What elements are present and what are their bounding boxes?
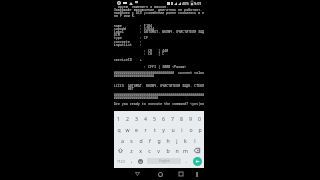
- button[interactable]: 9: [186, 113, 195, 124]
- button[interactable]: Home: [152, 168, 168, 180]
- staticText: 1: [117, 115, 120, 122]
- staticText: k: [184, 137, 187, 144]
- staticText: x: [139, 147, 142, 154]
- button[interactable]: c: [145, 145, 154, 155]
- button[interactable]: s: [127, 135, 136, 145]
- button[interactable]: ?123: [114, 155, 127, 167]
- staticText: m: [183, 147, 188, 154]
- staticText: 2: [126, 115, 129, 122]
- staticText: 8: [180, 115, 183, 122]
- button[interactable]: 8: [177, 113, 186, 124]
- staticText: ,: [131, 158, 133, 165]
- button[interactable]: 5: [150, 113, 159, 124]
- staticText: p: [198, 126, 202, 133]
- button[interactable]: l: [190, 135, 199, 145]
- staticText: 9:01: [194, 1, 202, 6]
- staticText: b: [166, 147, 170, 154]
- staticText: subadd : SIR44: [114, 27, 155, 31]
- staticText: h: [166, 137, 170, 144]
- button[interactable]: t: [150, 124, 159, 135]
- staticText: 40%: [182, 1, 190, 6]
- button[interactable]: d: [136, 135, 145, 145]
- staticText: z: [130, 147, 133, 154]
- staticText: 0: [198, 115, 201, 122]
- staticText: ########################################…: [114, 93, 204, 97]
- staticText: u: [171, 126, 175, 133]
- staticText: l: [194, 137, 196, 144]
- staticText: r: [144, 126, 147, 133]
- button[interactable]: z: [127, 145, 136, 155]
- staticText: serviceID +: [114, 58, 143, 62]
- staticText: ?123: [117, 159, 125, 164]
- button[interactable]: More options: [190, 168, 204, 180]
- staticText: наиболее с ACD усложнении ранее скопилос…: [114, 11, 204, 15]
- button[interactable]: a: [118, 135, 127, 145]
- staticText: j: [176, 137, 178, 144]
- staticText: 9: [189, 115, 192, 122]
- button[interactable]: r: [141, 124, 150, 135]
- staticText: a: [121, 137, 124, 144]
- button[interactable]: x: [136, 145, 145, 155]
- staticText: English: [159, 159, 170, 163]
- button[interactable]: b: [163, 145, 172, 155]
- button[interactable]: 2: [123, 113, 132, 124]
- staticText: Are you ready to execute the command? <y…: [114, 102, 204, 106]
- button[interactable]: m: [181, 145, 190, 155]
- button[interactable]: Emoji: [136, 155, 145, 167]
- staticText: w: [125, 126, 130, 133]
- staticText: t: [154, 126, 156, 133]
- staticText: 6: [162, 115, 165, 122]
- button[interactable]: 6: [159, 113, 168, 124]
- button[interactable]: n: [172, 145, 181, 155]
- button[interactable]: g: [154, 135, 163, 145]
- staticText: 5: [153, 115, 156, 122]
- button[interactable]: w: [123, 124, 132, 135]
- button[interactable]: q: [114, 124, 123, 135]
- staticText: НЕТ: [114, 87, 135, 91]
- staticText: n: [175, 147, 179, 154]
- button[interactable]: 7: [168, 113, 177, 124]
- button[interactable]: p: [195, 124, 204, 135]
- button[interactable]: u: [168, 124, 177, 135]
- staticText: 3: [135, 115, 138, 122]
- button[interactable]: English: [147, 158, 181, 164]
- button[interactable]: 4: [141, 113, 150, 124]
- button[interactable]: i: [177, 124, 186, 135]
- button[interactable]: y: [159, 124, 168, 135]
- button[interactable]: Back: [129, 168, 145, 180]
- staticText: ируем, замените а выхлоп.: [114, 6, 169, 9]
- button[interactable]: 0: [195, 113, 204, 124]
- staticText: Label : АВТОМАТ. ВКЛЮЧ. ОЧИСТИТЕЛЯ ЗАДН.…: [114, 30, 204, 34]
- button[interactable]: 1: [114, 113, 123, 124]
- button[interactable]: Period: [183, 155, 191, 167]
- staticText: : CFFI | 3000 <Param>: [114, 65, 187, 69]
- staticText: f: [149, 137, 151, 144]
- staticText: ############################## current v…: [114, 71, 204, 75]
- staticText: ####################: [114, 74, 155, 78]
- button[interactable]: Recents: [173, 168, 189, 180]
- button[interactable]: h: [163, 135, 172, 145]
- button[interactable]: j: [172, 135, 181, 145]
- button[interactable]: Shift: [114, 145, 127, 155]
- staticText: на Р или К.: [114, 14, 137, 18]
- button[interactable]: o: [186, 124, 195, 135]
- staticText: LCCIS АВТОМАТ. ВКЛЮЧ. ОЧИСТИТЕЛЯ ЗАДН. С…: [114, 84, 204, 88]
- staticText: inputList :: [114, 43, 143, 47]
- button[interactable]: 3: [132, 113, 141, 124]
- button[interactable]: f: [145, 135, 154, 145]
- staticText: s: [130, 137, 133, 144]
- staticText: .: [186, 158, 188, 165]
- button[interactable]: v: [154, 145, 163, 155]
- staticText: g: [157, 137, 161, 144]
- button[interactable]: Backspace: [190, 145, 204, 155]
- staticText: d: [139, 137, 143, 144]
- staticText: 7: [171, 115, 174, 122]
- button[interactable]: Comma: [127, 155, 136, 167]
- button[interactable]: e: [132, 124, 141, 135]
- staticText: : CH | C: [114, 52, 165, 56]
- staticText: y: [162, 126, 165, 133]
- button[interactable]: k: [181, 135, 190, 145]
- button[interactable]: Enter: [191, 155, 204, 167]
- staticText: DCM: [114, 33, 121, 37]
- staticText: i: [181, 126, 183, 133]
